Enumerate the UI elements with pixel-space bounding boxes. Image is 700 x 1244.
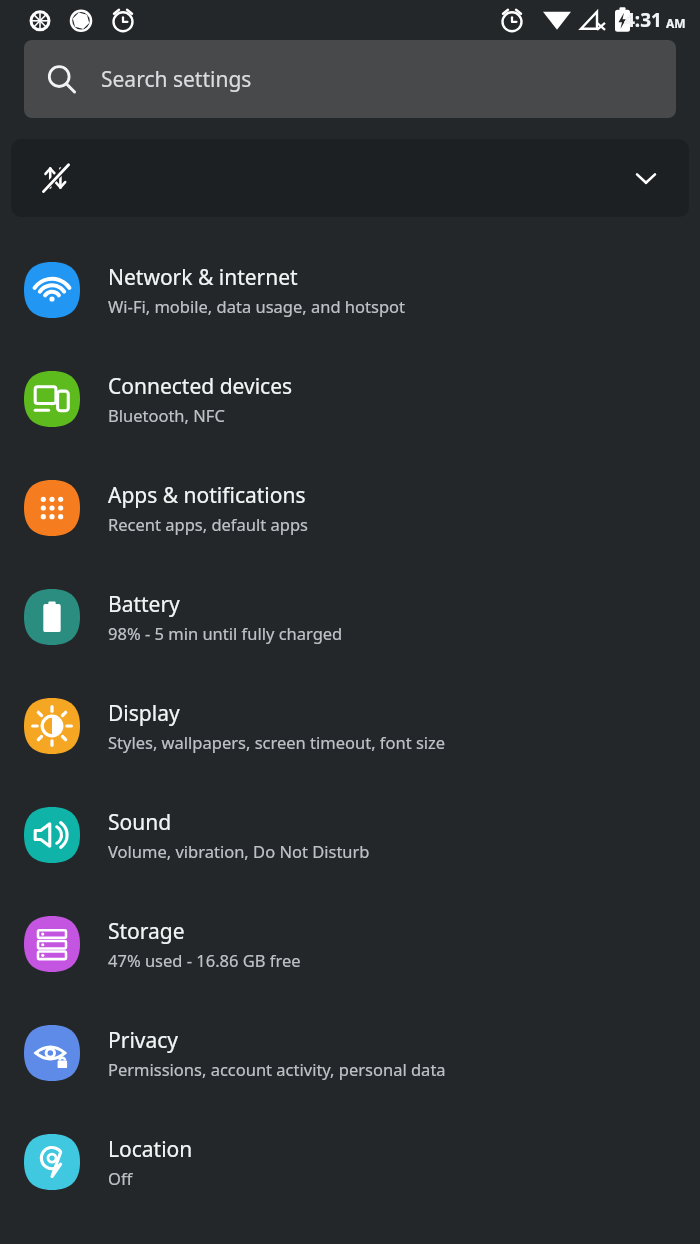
staticText: Apps & notifications (108, 481, 306, 510)
staticText: Storage (108, 917, 185, 946)
staticText: Battery (108, 590, 180, 619)
staticText: 98% - 5 min until fully charged (108, 622, 343, 644)
other: Search (46, 64, 76, 94)
staticText: Wi-Fi, mobile, data usage, and hotspot (108, 295, 405, 317)
button[interactable]: Data Saver off (11, 139, 689, 217)
staticText: Privacy (108, 1026, 179, 1055)
other: Expand (631, 163, 661, 193)
staticText: Styles, wallpapers, screen timeout, font… (108, 731, 446, 753)
staticText: Connected devices (108, 372, 293, 401)
other: Data Saver off (39, 161, 73, 195)
staticText: Bluetooth, NFC (108, 404, 225, 426)
staticText: AM (666, 15, 686, 31)
button[interactable]: Network & internet (0, 235, 700, 344)
button[interactable]: Search (24, 40, 676, 118)
staticText: 47% used - 16.86 GB free (108, 949, 301, 971)
button[interactable]: Privacy (0, 998, 700, 1107)
staticText: 4:31 (624, 7, 662, 33)
button[interactable]: Battery (0, 562, 700, 671)
button[interactable]: Sound (0, 780, 700, 889)
staticText: Network & internet (108, 263, 298, 292)
staticText: Volume, vibration, Do Not Disturb (108, 840, 370, 862)
button[interactable]: Storage (0, 889, 700, 998)
button[interactable]: Connected devices (0, 344, 700, 453)
staticText: Permissions, account activity, personal … (108, 1058, 446, 1080)
button[interactable]: Apps & notifications (0, 453, 700, 562)
staticText: Off (108, 1167, 133, 1189)
staticText: Sound (108, 808, 172, 837)
staticText: Recent apps, default apps (108, 513, 308, 535)
staticText: Display (108, 699, 180, 728)
staticText: Location (108, 1135, 193, 1164)
button[interactable]: Display (0, 671, 700, 780)
button[interactable]: Location (0, 1107, 700, 1216)
staticText: Search settings (101, 65, 252, 94)
